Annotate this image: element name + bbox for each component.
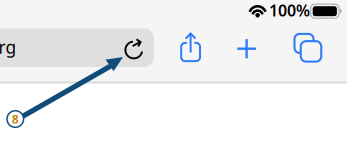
staticText: 8 [12,111,19,127]
button[interactable]: Share [170,25,212,69]
staticText: 100% [269,0,310,21]
button[interactable]: New Tab [226,27,268,71]
button[interactable]: Show Tabs [285,25,329,69]
staticText: rg [0,35,17,58]
button[interactable]: Reload [117,29,151,69]
